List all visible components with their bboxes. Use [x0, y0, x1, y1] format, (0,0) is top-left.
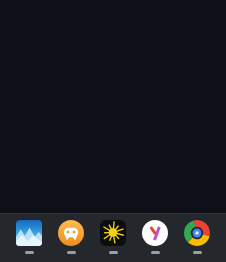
button[interactable]: Yandex Browser — [136, 214, 174, 262]
button[interactable]: Gallery — [10, 214, 48, 262]
button[interactable]: Discord — [52, 214, 90, 262]
button[interactable]: Chrome — [178, 214, 216, 262]
button[interactable]: Sparkle — [94, 214, 132, 262]
